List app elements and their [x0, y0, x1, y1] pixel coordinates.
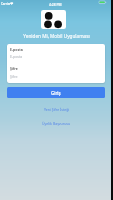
button[interactable]: Giriş [7, 87, 105, 98]
staticText: 4:28 PM [49, 2, 62, 6]
staticText: Şifre [10, 74, 18, 79]
staticText: Yeni Şifre İsteği [44, 107, 70, 112]
staticText: E-posta [10, 54, 23, 59]
staticText: Yeniden Mi, Mobil Uygulaması [0, 33, 113, 39]
button[interactable]: Yeni Şifre İsteği [0, 105, 113, 113]
staticText: Giriş [51, 90, 61, 96]
button[interactable]: Üyelik Başvurusu [0, 119, 113, 127]
staticText: Carrier [1, 2, 11, 6]
staticText: Şifre [10, 66, 18, 71]
staticText: Üyelik Başvurusu [42, 121, 71, 126]
staticText: E-posta [10, 47, 23, 52]
